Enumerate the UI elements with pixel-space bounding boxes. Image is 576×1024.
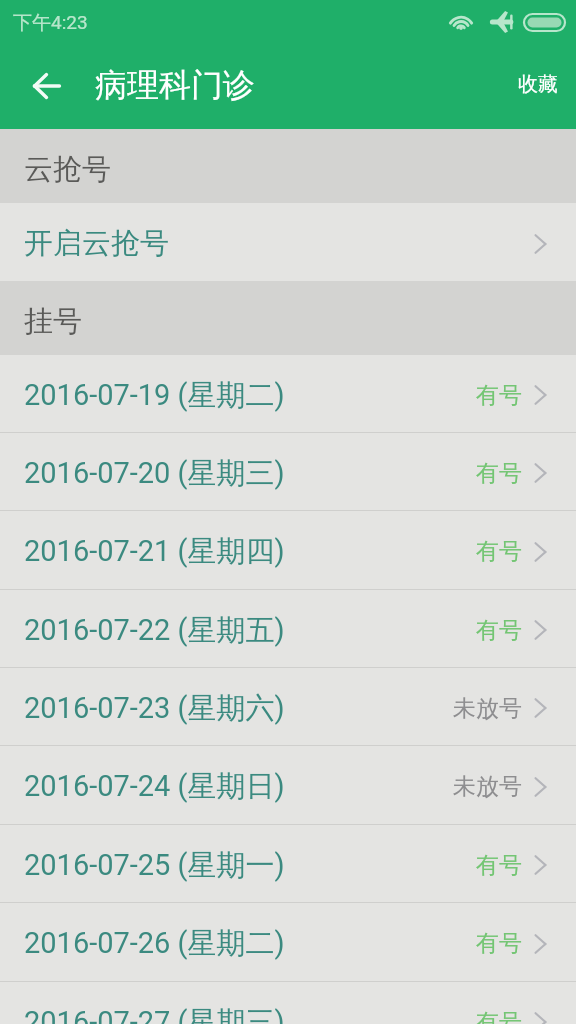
staticText: 2016-07-22 (星期五)	[24, 612, 285, 649]
staticText: 有号	[476, 1008, 522, 1024]
staticText: 2016-07-27 (星期三)	[24, 1004, 285, 1024]
staticText: 有号	[476, 459, 522, 488]
staticText: 有号	[476, 851, 522, 880]
staticText: 2016-07-20 (星期三)	[24, 455, 285, 492]
staticText: 有号	[476, 616, 522, 645]
staticText: 开启云抢号	[24, 225, 169, 262]
staticText: 有号	[476, 929, 522, 958]
button[interactable]: 2016-07-19 (星期二)	[0, 355, 576, 433]
staticText: 未放号	[453, 772, 522, 801]
button[interactable]: 开启云抢号	[0, 203, 576, 281]
staticText: 有号	[476, 537, 522, 566]
staticText: 2016-07-24 (星期日)	[24, 768, 285, 805]
button[interactable]: 2016-07-24 (星期日)	[0, 746, 576, 825]
button[interactable]: 2016-07-22 (星期五)	[0, 590, 576, 668]
button[interactable]: 2016-07-27 (星期三)	[0, 982, 576, 1024]
button[interactable]: Back	[0, 46, 92, 129]
staticText: 收藏	[518, 72, 558, 97]
staticText: 2016-07-19 (星期二)	[24, 377, 285, 414]
staticText: 2016-07-21 (星期四)	[24, 533, 285, 570]
button[interactable]: 2016-07-20 (星期三)	[0, 433, 576, 511]
button[interactable]: 收藏	[501, 46, 576, 129]
staticText: 挂号	[24, 303, 82, 340]
button[interactable]: 2016-07-25 (星期一)	[0, 825, 576, 903]
button[interactable]: 2016-07-26 (星期二)	[0, 903, 576, 982]
staticText: 下午4:23	[13, 11, 88, 35]
staticText: 云抢号	[24, 151, 111, 188]
staticText: 2016-07-26 (星期二)	[24, 925, 285, 962]
staticText: 未放号	[453, 694, 522, 723]
button[interactable]: 2016-07-23 (星期六)	[0, 668, 576, 746]
staticText: 2016-07-23 (星期六)	[24, 690, 285, 727]
staticText: 病理科门诊	[95, 65, 255, 105]
staticText: 2016-07-25 (星期一)	[24, 847, 285, 884]
staticText: 有号	[476, 381, 522, 410]
button[interactable]: 2016-07-21 (星期四)	[0, 511, 576, 590]
